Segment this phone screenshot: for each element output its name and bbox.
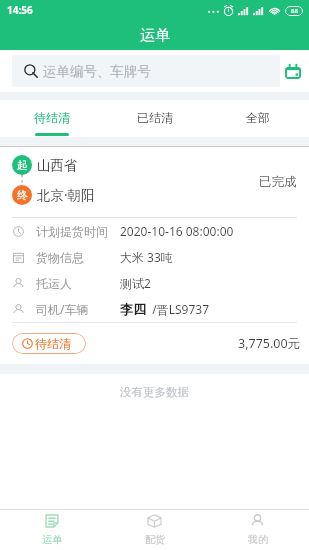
button[interactable]: 起 xyxy=(0,147,309,364)
button[interactable]: Select date xyxy=(279,57,307,85)
staticText: 已结清 xyxy=(137,110,173,125)
staticText: 终 xyxy=(17,188,28,202)
staticText: 李四 xyxy=(120,301,146,317)
staticText: 待结清 xyxy=(35,336,71,351)
staticText: 测试2 xyxy=(120,275,151,291)
button[interactable]: 全部 xyxy=(206,100,309,137)
staticText: 大米 33吨 xyxy=(120,249,173,265)
staticText: 运单编号、车牌号 xyxy=(43,63,151,80)
button[interactable]: 待结清 xyxy=(12,333,86,354)
staticText: 运单 xyxy=(42,533,62,546)
staticText: 运单 xyxy=(140,26,170,45)
staticText: 北京·朝阳 xyxy=(37,186,95,204)
staticText: 2020-10-16 08:00:00 xyxy=(120,223,234,239)
staticText: 配货 xyxy=(145,533,165,546)
staticText: /晋LS9737 xyxy=(146,301,210,317)
staticText: 我的 xyxy=(248,533,268,546)
staticText: 货物信息 xyxy=(36,250,84,265)
staticText: 已完成 xyxy=(259,174,297,190)
staticText: 山西省 xyxy=(37,157,78,174)
button[interactable]: 运单 xyxy=(0,510,103,550)
staticText: 没有更多数据 xyxy=(120,385,189,399)
staticText: 88 xyxy=(291,7,298,15)
button[interactable]: 我的 xyxy=(206,510,309,550)
staticText: 14:56 xyxy=(7,3,33,17)
staticText: 计划提货时间 xyxy=(36,224,108,239)
staticText: 全部 xyxy=(246,110,270,125)
staticText: 待结清 xyxy=(34,110,70,125)
staticText: 托运人 xyxy=(36,276,72,291)
button[interactable]: 运单编号、车牌号 xyxy=(12,55,280,87)
staticText: 司机/车辆 xyxy=(36,301,89,317)
button[interactable]: 配货 xyxy=(103,510,206,550)
button[interactable]: 已结清 xyxy=(103,100,206,137)
staticText: 3,775.00元 xyxy=(238,335,301,352)
staticText: 起 xyxy=(17,158,28,172)
button[interactable]: 待结清 xyxy=(0,100,103,137)
